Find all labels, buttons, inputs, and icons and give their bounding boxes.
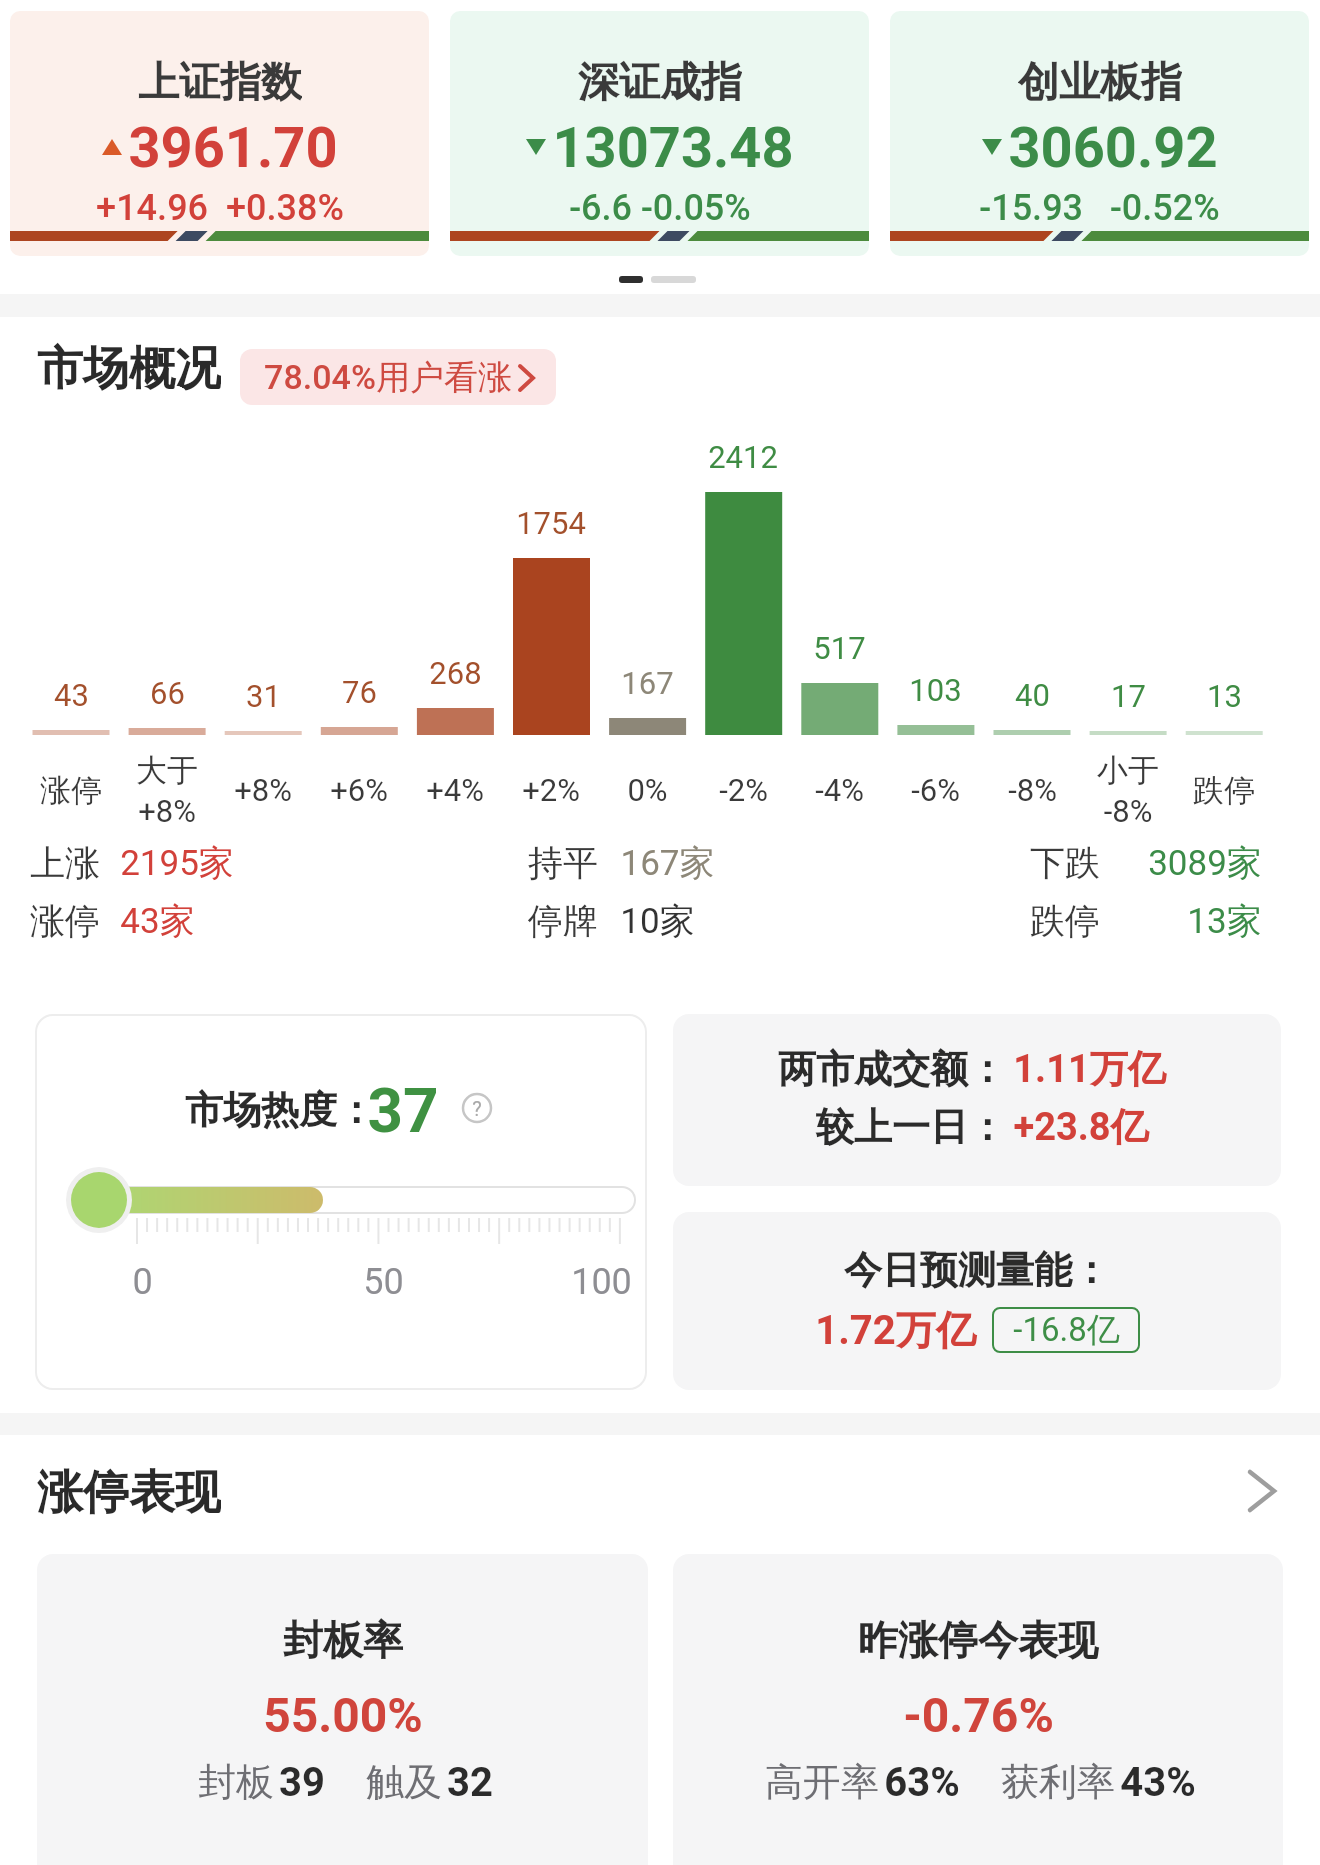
- staticText: ?: [472, 1097, 482, 1120]
- button[interactable]: 两市成交额：: [673, 1014, 1281, 1186]
- staticText: 17: [1111, 678, 1146, 714]
- staticText: 50: [363, 1261, 404, 1303]
- staticText: -6%: [911, 772, 960, 808]
- button[interactable]: 上证指数: [10, 11, 429, 256]
- staticText: 小于 -8%: [1097, 751, 1159, 829]
- staticText: 40: [1015, 677, 1050, 713]
- staticText: +4%: [426, 772, 484, 808]
- staticText: +23.8亿: [1013, 1103, 1149, 1151]
- button[interactable]: 78.04%用户看涨: [240, 349, 556, 405]
- staticText: -6.6 -0.05%: [569, 187, 751, 227]
- staticText: 停牌: [528, 899, 598, 939]
- staticText: 10家: [620, 899, 695, 939]
- staticText: -0.76%: [903, 1687, 1054, 1739]
- staticText: 市场概况: [37, 340, 221, 396]
- staticText: 3089家: [1148, 841, 1262, 881]
- staticText: 32: [447, 1759, 493, 1806]
- staticText: 13: [1207, 678, 1242, 714]
- staticText: +14.96 +0.38%: [96, 187, 344, 227]
- staticText: 市场热度：: [185, 1086, 375, 1134]
- staticText: 上涨: [30, 841, 100, 881]
- staticText: 167: [621, 665, 674, 701]
- staticText: 大于 +8%: [136, 751, 198, 829]
- staticText: 昨涨停今表现: [858, 1615, 1098, 1665]
- staticText: 封板: [193, 1758, 279, 1806]
- staticText: 高开率: [760, 1758, 884, 1806]
- staticText: 43家: [120, 899, 195, 939]
- staticText: +2%: [522, 772, 580, 808]
- staticText: 2195家: [120, 841, 234, 881]
- staticText: -15.93 -0.52%: [979, 187, 1220, 227]
- staticText: 76: [342, 674, 377, 710]
- staticText: 两市成交额：: [778, 1045, 1006, 1093]
- staticText: 39: [279, 1759, 325, 1806]
- staticText: 1.72万亿: [815, 1305, 976, 1355]
- staticText: 167家: [620, 841, 715, 881]
- staticText: 66: [150, 675, 185, 711]
- staticText: -16.8亿: [1013, 1309, 1120, 1351]
- staticText: 31: [246, 678, 281, 714]
- staticText: 37: [367, 1074, 439, 1147]
- staticText: 上证指数: [138, 57, 302, 107]
- button[interactable]: 封板率: [37, 1554, 648, 1865]
- staticText: 3060.92: [1008, 115, 1218, 179]
- staticText: 2412: [708, 439, 778, 475]
- staticText: 517: [813, 630, 866, 666]
- staticText: 13家: [1187, 899, 1262, 939]
- staticText: 43%: [1120, 1759, 1196, 1806]
- staticText: 43: [54, 677, 89, 713]
- button[interactable]: 今日预测量能：: [673, 1212, 1281, 1390]
- staticText: -4%: [815, 772, 864, 808]
- staticText: 55.00%: [263, 1687, 423, 1739]
- staticText: 1754: [516, 505, 586, 541]
- staticText: 触及: [361, 1758, 447, 1806]
- staticText: -8%: [1008, 772, 1057, 808]
- button[interactable]: 创业板指: [890, 11, 1309, 256]
- staticText: -2%: [719, 772, 768, 808]
- staticText: 跌停: [1193, 771, 1255, 810]
- staticText: 涨停: [40, 771, 102, 810]
- staticText: 跌停: [1030, 899, 1100, 939]
- staticText: 78.04%用户看涨: [264, 356, 512, 399]
- button[interactable]: 深证成指: [450, 11, 869, 256]
- button[interactable]: 市场热度：: [35, 1014, 647, 1390]
- staticText: 获利率: [996, 1758, 1120, 1806]
- staticText: 较上一日：: [816, 1103, 1006, 1151]
- staticText: 封板率: [283, 1615, 403, 1665]
- staticText: 下跌: [1030, 841, 1100, 881]
- staticText: 1.11万亿: [1013, 1045, 1166, 1093]
- staticText: 3961.70: [128, 115, 338, 179]
- staticText: 涨停表现: [37, 1464, 221, 1516]
- staticText: 0: [132, 1261, 153, 1303]
- staticText: 103: [909, 672, 962, 708]
- button[interactable]: 昨涨停今表现: [673, 1554, 1283, 1865]
- button[interactable]: 涨停表现: [0, 1450, 1320, 1530]
- staticText: 268: [429, 655, 482, 691]
- staticText: 创业板指: [1018, 57, 1182, 107]
- staticText: 63%: [884, 1759, 960, 1806]
- staticText: +6%: [330, 772, 388, 808]
- staticText: +8%: [234, 772, 292, 808]
- staticText: 涨停: [30, 899, 100, 939]
- staticText: 13073.48: [552, 115, 794, 179]
- staticText: 深证成指: [578, 57, 742, 107]
- staticText: 持平: [528, 841, 598, 881]
- staticText: 0%: [627, 772, 668, 808]
- staticText: 100: [571, 1261, 632, 1303]
- staticText: 今日预测量能：: [844, 1246, 1110, 1294]
